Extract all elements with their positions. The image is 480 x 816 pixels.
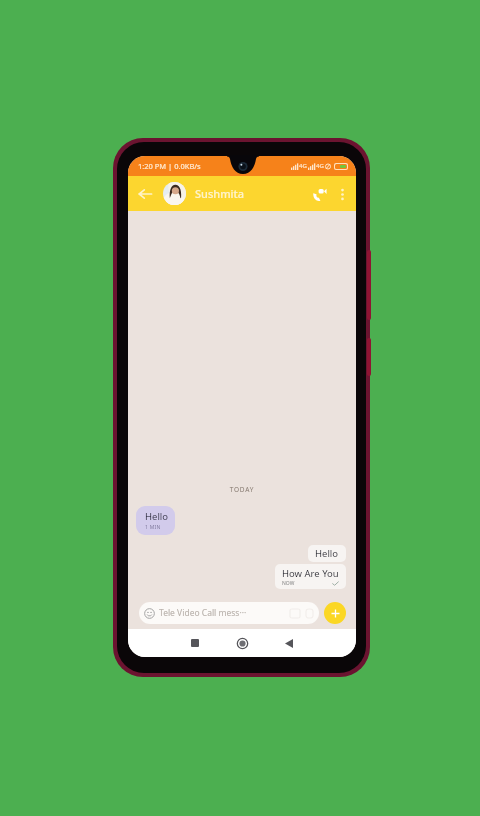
button[interactable]: Recents (181, 629, 209, 657)
staticText: Sushmita (195, 186, 245, 201)
staticText: Hello (145, 510, 169, 523)
button[interactable]: Hello (308, 545, 346, 562)
staticText: NOW (282, 580, 295, 587)
button[interactable]: Home (228, 629, 256, 657)
staticText: Hello (315, 547, 339, 560)
staticText: TODAY (128, 485, 356, 494)
staticText: 1 MIN (145, 524, 161, 531)
staticText: 4G (299, 162, 307, 170)
button[interactable]: How Are You (275, 564, 346, 589)
button[interactable]: More options (332, 184, 352, 204)
staticText: How Are You (282, 567, 339, 580)
other: Contact photo (163, 182, 186, 205)
button[interactable]: Tele Video Call mess··· (139, 602, 319, 624)
button[interactable]: Contact photo (163, 182, 245, 205)
staticText: 1:20 PM | 0.0KB/s (138, 161, 201, 171)
button[interactable]: Hello (136, 506, 175, 535)
button[interactable]: Send (324, 602, 346, 624)
button[interactable]: Back (133, 182, 157, 206)
staticText: 4G (316, 162, 324, 170)
button[interactable]: Back (275, 629, 303, 657)
button[interactable]: Video call (306, 181, 332, 207)
staticText: Tele Video Call mess··· (159, 607, 247, 619)
